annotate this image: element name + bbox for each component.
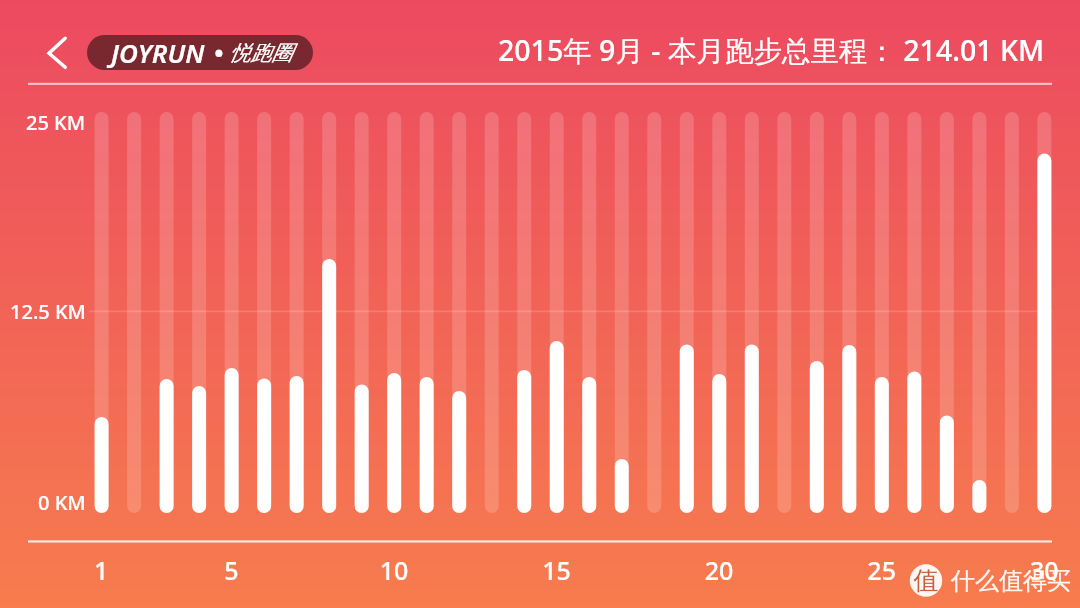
button[interactable]: JOYRUN 悦跑圈 (87, 35, 313, 70)
button[interactable]: Back (34, 29, 82, 77)
